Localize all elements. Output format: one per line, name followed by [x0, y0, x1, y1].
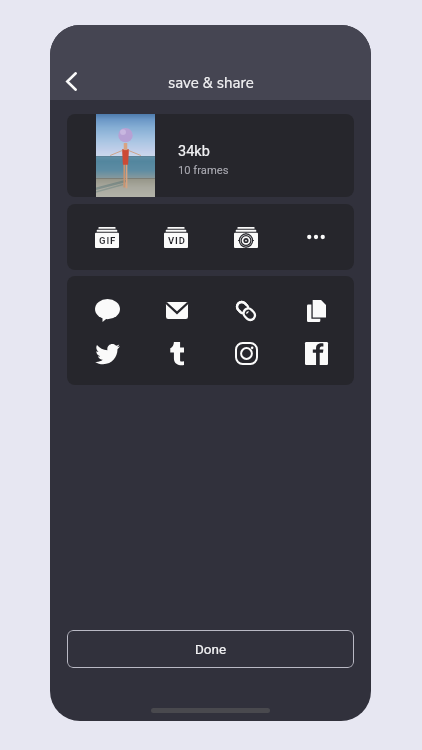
button[interactable]: Share on Instagram — [211, 332, 281, 375]
button[interactable]: 34kb — [67, 114, 354, 197]
button[interactable]: Save as video — [141, 204, 211, 270]
staticText: save & share — [168, 73, 254, 93]
button[interactable]: Save as GIF — [72, 204, 141, 270]
staticText: Done — [195, 641, 227, 657]
button[interactable]: Done — [67, 630, 354, 668]
staticText: GIF — [99, 235, 117, 246]
staticText: 34kb — [178, 143, 210, 160]
button[interactable]: Save photo — [211, 204, 281, 270]
button[interactable]: More options — [281, 204, 351, 270]
staticText: 10 frames — [178, 164, 229, 177]
button[interactable]: Share on Facebook — [281, 332, 351, 375]
staticText: VID — [168, 235, 186, 246]
button[interactable]: Share on Tumblr — [142, 332, 211, 375]
button[interactable]: Copy link — [211, 289, 281, 332]
button[interactable]: Send message — [73, 289, 142, 332]
button[interactable]: Back — [51, 61, 91, 101]
button[interactable]: Copy — [281, 289, 351, 332]
button[interactable]: Share on Twitter — [73, 332, 142, 375]
button[interactable]: Send email — [142, 289, 211, 332]
